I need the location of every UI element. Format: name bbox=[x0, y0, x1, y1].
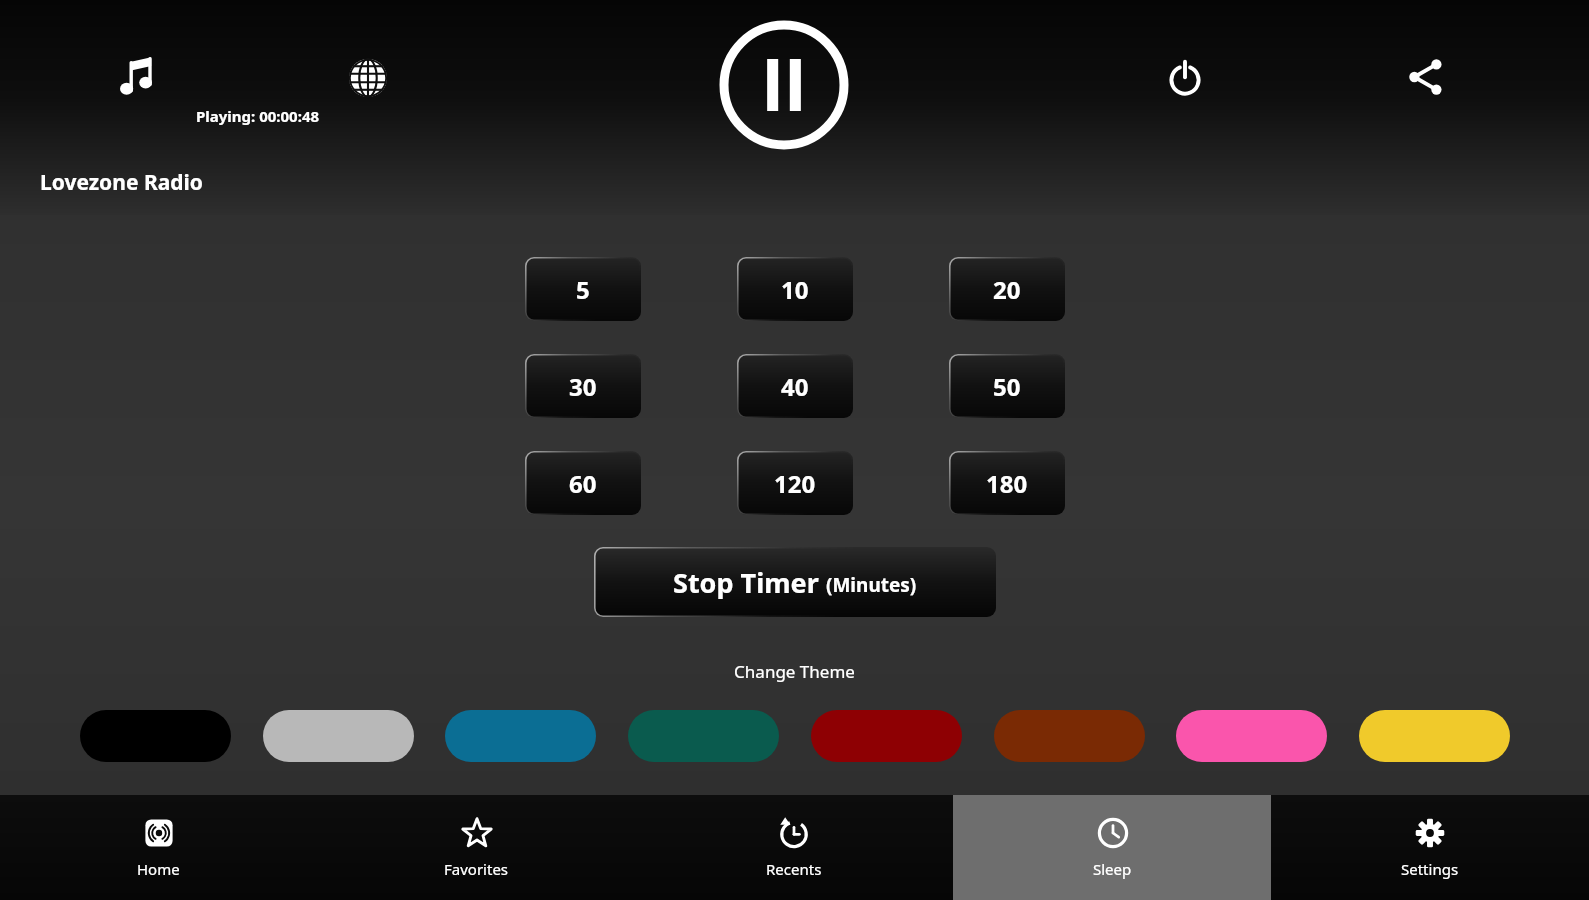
button[interactable]: 180 bbox=[949, 451, 1065, 515]
button[interactable]: 30 bbox=[525, 354, 641, 418]
staticText: 20 bbox=[993, 273, 1021, 306]
button[interactable]: Theme colour bbox=[263, 710, 414, 762]
button[interactable]: Theme colour bbox=[445, 710, 596, 762]
button[interactable]: 10 bbox=[737, 257, 853, 321]
staticText: 10 bbox=[781, 273, 809, 306]
staticText: Settings bbox=[1401, 859, 1459, 879]
button[interactable]: Theme colour bbox=[1359, 710, 1510, 762]
staticText: Lovezone Radio bbox=[40, 168, 203, 197]
button[interactable]: Power bbox=[1155, 48, 1215, 108]
staticText: 180 bbox=[986, 467, 1028, 500]
button[interactable]: Theme colour bbox=[994, 710, 1145, 762]
button[interactable]: 60 bbox=[525, 451, 641, 515]
button[interactable]: 20 bbox=[949, 257, 1065, 321]
staticText: 30 bbox=[569, 370, 597, 403]
button[interactable]: Theme colour bbox=[1176, 710, 1327, 762]
staticText: Home bbox=[137, 859, 180, 879]
button[interactable]: 40 bbox=[737, 354, 853, 418]
button[interactable]: Home bbox=[0, 795, 317, 900]
staticText: Recents bbox=[766, 859, 822, 879]
staticText: Stop Timer bbox=[673, 564, 826, 601]
button[interactable]: Favorites bbox=[317, 795, 635, 900]
button[interactable]: Music bbox=[108, 48, 168, 108]
button[interactable]: 50 bbox=[949, 354, 1065, 418]
staticText: Sleep bbox=[1093, 859, 1132, 879]
button[interactable]: Stop Timer bbox=[594, 547, 996, 617]
button[interactable]: Pause bbox=[709, 10, 859, 160]
staticText: 50 bbox=[993, 370, 1021, 403]
staticText: 5 bbox=[576, 273, 590, 306]
staticText: Favorites bbox=[444, 859, 509, 879]
button[interactable]: Settings bbox=[1271, 795, 1589, 900]
button[interactable]: Sleep bbox=[953, 795, 1271, 900]
button[interactable]: Website bbox=[338, 48, 398, 108]
staticText: Playing: 00:00:48 bbox=[196, 106, 320, 126]
staticText: 60 bbox=[569, 467, 597, 500]
button[interactable]: Theme colour bbox=[80, 710, 231, 762]
staticText: Change Theme bbox=[734, 660, 855, 683]
button[interactable]: 5 bbox=[525, 257, 641, 321]
button[interactable]: Theme colour bbox=[811, 710, 962, 762]
staticText: 40 bbox=[781, 370, 809, 403]
button[interactable]: Share bbox=[1394, 46, 1456, 108]
button[interactable]: Recents bbox=[635, 795, 953, 900]
staticText: (Minutes) bbox=[826, 572, 917, 598]
button[interactable]: Theme colour bbox=[628, 710, 779, 762]
button[interactable]: 120 bbox=[737, 451, 853, 515]
staticText: 120 bbox=[774, 467, 816, 500]
